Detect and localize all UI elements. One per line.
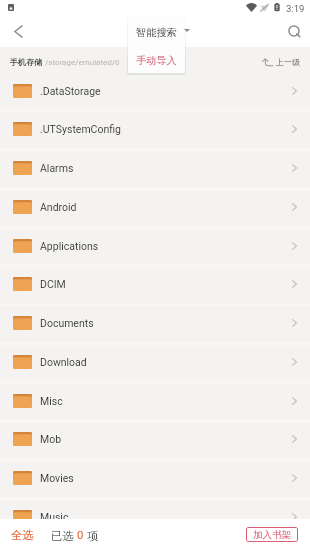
button[interactable]: 智能搜索	[128, 17, 185, 47]
button[interactable]: Alarms	[0, 148, 310, 187]
staticText: .UTSystemConfig	[40, 123, 121, 135]
staticText: 已选	[51, 528, 77, 543]
button[interactable]: Expand menu	[179, 23, 195, 37]
staticText: 上一级	[276, 57, 300, 67]
staticText: 全选	[11, 528, 34, 542]
staticText: 3:19	[286, 3, 305, 14]
button[interactable]: 全选	[0, 523, 40, 547]
button[interactable]: .UTSystemConfig	[0, 109, 310, 148]
button[interactable]: Android	[0, 187, 310, 226]
staticText: Movies	[40, 472, 74, 484]
staticText: 0	[77, 529, 84, 542]
staticText: Alarms	[40, 162, 74, 174]
staticText: 手动导入	[136, 54, 177, 67]
button[interactable]: 加入书架	[246, 527, 298, 542]
staticText: 项	[84, 528, 99, 543]
staticText: Misc	[40, 395, 63, 407]
staticText: 智能搜索	[136, 26, 177, 39]
button[interactable]: 上一级	[262, 57, 300, 67]
button[interactable]: Music	[0, 497, 310, 536]
button[interactable]: DCIM	[0, 264, 310, 303]
staticText: 手机存储	[10, 57, 42, 67]
button[interactable]: Misc	[0, 381, 310, 420]
button[interactable]: Documents	[0, 303, 310, 342]
button[interactable]: 手动导入	[128, 47, 185, 73]
staticText: 加入书架	[253, 529, 291, 541]
staticText: Download	[40, 356, 87, 368]
staticText: DCIM	[40, 278, 66, 290]
button[interactable]: Download	[0, 342, 310, 381]
staticText: Documents	[40, 317, 94, 329]
staticText: .DataStorage	[40, 85, 101, 97]
staticText: Applications	[40, 240, 99, 252]
staticText: Android	[40, 201, 77, 213]
button[interactable]: Search	[281, 18, 309, 46]
button[interactable]: .DataStorage	[0, 71, 310, 110]
staticText: /storage/emulated/0	[45, 58, 120, 67]
button[interactable]: Back	[4, 17, 32, 45]
staticText: Mob	[40, 433, 62, 445]
button[interactable]: Movies	[0, 458, 310, 497]
staticText: Music	[40, 511, 69, 523]
button[interactable]: Mob	[0, 419, 310, 458]
button[interactable]: Applications	[0, 226, 310, 265]
